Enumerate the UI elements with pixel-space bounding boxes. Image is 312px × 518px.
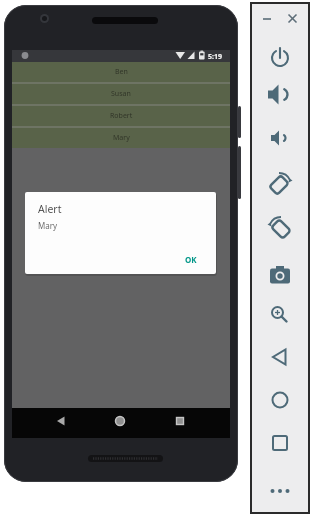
button[interactable]: [264, 166, 296, 198]
staticText: Mary: [38, 220, 58, 231]
staticText: OK: [185, 254, 197, 265]
staticText: Susan: [111, 89, 131, 99]
staticText: Robert: [110, 111, 133, 121]
button[interactable]: [264, 382, 296, 414]
staticText: Alert: [38, 202, 62, 216]
staticText: Ben: [115, 67, 128, 77]
button[interactable]: [264, 76, 296, 108]
button[interactable]: [264, 120, 296, 152]
button[interactable]: [264, 473, 296, 505]
button[interactable]: [264, 339, 296, 371]
button[interactable]: [264, 258, 296, 290]
staticText: 5:19: [208, 52, 222, 62]
button[interactable]: OK: [177, 250, 205, 268]
button[interactable]: [258, 10, 272, 24]
button[interactable]: [264, 297, 296, 329]
button[interactable]: [285, 10, 299, 24]
button[interactable]: [46, 408, 76, 437]
button[interactable]: [264, 425, 296, 457]
button[interactable]: [264, 40, 296, 72]
button[interactable]: [264, 210, 296, 242]
button[interactable]: [165, 408, 195, 437]
staticText: Mary: [113, 133, 130, 143]
button[interactable]: [105, 408, 135, 437]
